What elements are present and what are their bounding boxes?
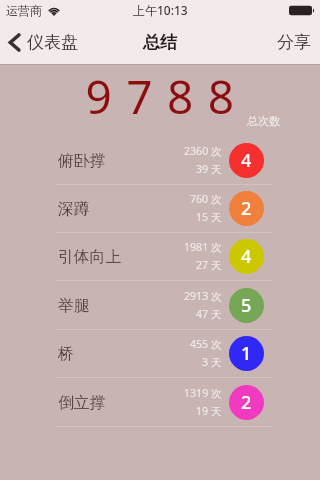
button[interactable]: 引体向上 (0, 233, 320, 281)
button[interactable]: 举腿 (0, 282, 320, 330)
staticText: 4 (241, 148, 252, 173)
staticText: 47 天 (196, 307, 222, 321)
staticText: 仪表盘 (27, 32, 78, 53)
staticText: 1 (241, 341, 252, 366)
button[interactable]: 倒立撑 (0, 379, 320, 427)
staticText: 引体向上 (58, 247, 122, 267)
button[interactable]: 仪表盘 (0, 26, 86, 59)
staticText: 3 天 (202, 355, 222, 369)
button[interactable]: 分享 (267, 24, 320, 61)
staticText: 4 (241, 244, 252, 269)
staticText: 总次数 (247, 114, 280, 128)
staticText: 2 (241, 390, 252, 415)
staticText: 2360 次 (184, 144, 222, 158)
button[interactable]: 桥 (0, 330, 320, 378)
button[interactable]: 深蹲 (0, 185, 320, 233)
staticText: 39 天 (196, 162, 222, 176)
staticText: 俯卧撑 (58, 151, 106, 171)
staticText: 1981 次 (184, 240, 222, 254)
staticText: 1319 次 (184, 386, 222, 400)
staticText: 5 (241, 293, 252, 318)
button[interactable]: 俯卧撑 (0, 137, 320, 185)
staticText: 桥 (58, 344, 74, 364)
staticText: 倒立撑 (58, 393, 106, 413)
staticText: 2913 次 (184, 289, 222, 303)
staticText: 9788 (85, 65, 249, 115)
staticText: 27 天 (196, 258, 222, 272)
staticText: 2 (241, 196, 252, 221)
staticText: 深蹲 (58, 199, 90, 219)
staticText: 19 天 (196, 404, 222, 418)
staticText: 总结 (143, 32, 177, 53)
staticText: 上午10:13 (133, 2, 188, 18)
staticText: 15 天 (196, 210, 222, 224)
staticText: 760 次 (190, 192, 222, 206)
staticText: 举腿 (58, 296, 90, 316)
staticText: 455 次 (190, 337, 222, 351)
staticText: 运营商 (6, 3, 42, 18)
